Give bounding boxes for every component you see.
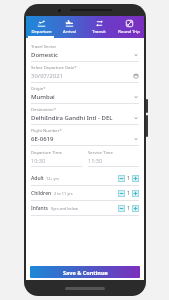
- staticText: 1: [127, 175, 130, 182]
- staticText: 0yrs and below: [51, 206, 78, 211]
- staticText: Transit: [92, 29, 106, 35]
- button[interactable]: Origin*: [31, 83, 139, 104]
- staticText: Destination*: [31, 107, 56, 113]
- button[interactable]: Select Departure Date*: [31, 62, 139, 83]
- button[interactable]: Departure Time: [31, 147, 82, 167]
- button[interactable]: Increase Children: [132, 190, 139, 197]
- button[interactable]: Flight Number*: [31, 125, 139, 146]
- staticText: Select Departure Date*: [31, 65, 77, 71]
- staticText: 1: [127, 205, 130, 212]
- staticText: DelhiIndira Gandhi Intl - DEL: [31, 114, 133, 122]
- staticText: Service Time: [88, 150, 113, 156]
- button[interactable]: Save & Continue: [30, 266, 140, 278]
- button[interactable]: Departure: [26, 16, 55, 38]
- staticText: Origin*: [31, 86, 46, 92]
- staticText: 1: [127, 190, 130, 197]
- staticText: 6E-0619: [31, 135, 133, 143]
- button[interactable]: Travel Sector: [31, 41, 139, 62]
- staticText: Infants: [31, 205, 49, 212]
- button[interactable]: Destination*: [31, 104, 139, 125]
- staticText: 30/07/2021: [31, 72, 133, 80]
- button[interactable]: Decrease Adult: [118, 175, 125, 182]
- staticText: Save & Continue: [63, 269, 108, 276]
- staticText: 10:30: [31, 157, 46, 164]
- staticText: Departure Time: [31, 150, 62, 156]
- button[interactable]: Service Time: [88, 147, 139, 167]
- staticText: Round Trip: [118, 29, 140, 35]
- staticText: 2 to 11 yrs: [54, 191, 73, 196]
- button[interactable]: Round Trip: [114, 16, 144, 38]
- staticText: Mumbai: [31, 93, 133, 101]
- button[interactable]: Arrival: [55, 16, 84, 38]
- staticText: Domestic: [31, 51, 133, 59]
- staticText: Children: [31, 190, 52, 197]
- staticText: Travel Sector: [31, 44, 57, 50]
- staticText: Arrival: [63, 29, 76, 35]
- staticText: Departure: [31, 29, 52, 35]
- staticText: 12+ yrs: [46, 176, 59, 181]
- button[interactable]: Increase Infants: [132, 205, 139, 212]
- staticText: Adult: [31, 175, 44, 182]
- button[interactable]: Increase Adult: [132, 175, 139, 182]
- button[interactable]: Decrease Infants: [118, 205, 125, 212]
- staticText: Flight Number*: [31, 128, 62, 134]
- button[interactable]: Transit: [84, 16, 114, 38]
- staticText: 11:30: [88, 157, 103, 164]
- button[interactable]: Decrease Children: [118, 190, 125, 197]
